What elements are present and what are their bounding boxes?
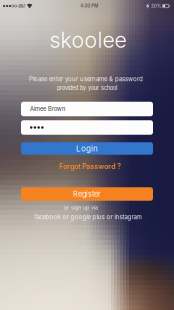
staticText: skoolee (49, 27, 126, 53)
staticText: Forgot Password ? (59, 162, 121, 171)
staticText: facebook or google plus or instagram (34, 213, 141, 221)
staticText: Please enter your username & password (29, 75, 143, 83)
button[interactable]: Forgot Password ? (50, 161, 130, 171)
button[interactable]: Password (21, 120, 153, 135)
staticText: or sign up via (64, 204, 98, 211)
button[interactable]: or sign up via (61, 203, 101, 211)
button[interactable]: Login (21, 142, 153, 155)
button[interactable]: facebook or google plus or instagram (28, 212, 148, 221)
staticText: 4:30 PM (80, 3, 98, 9)
button[interactable]: Register (21, 187, 153, 201)
staticText: at&t (18, 3, 25, 9)
staticText: Aimee Brown (30, 106, 65, 112)
staticText: Login (76, 144, 98, 153)
staticText: Register (73, 190, 101, 198)
staticText: provided by your school (57, 85, 117, 91)
staticText: 30% (151, 3, 161, 9)
button[interactable]: Username (21, 102, 153, 116)
